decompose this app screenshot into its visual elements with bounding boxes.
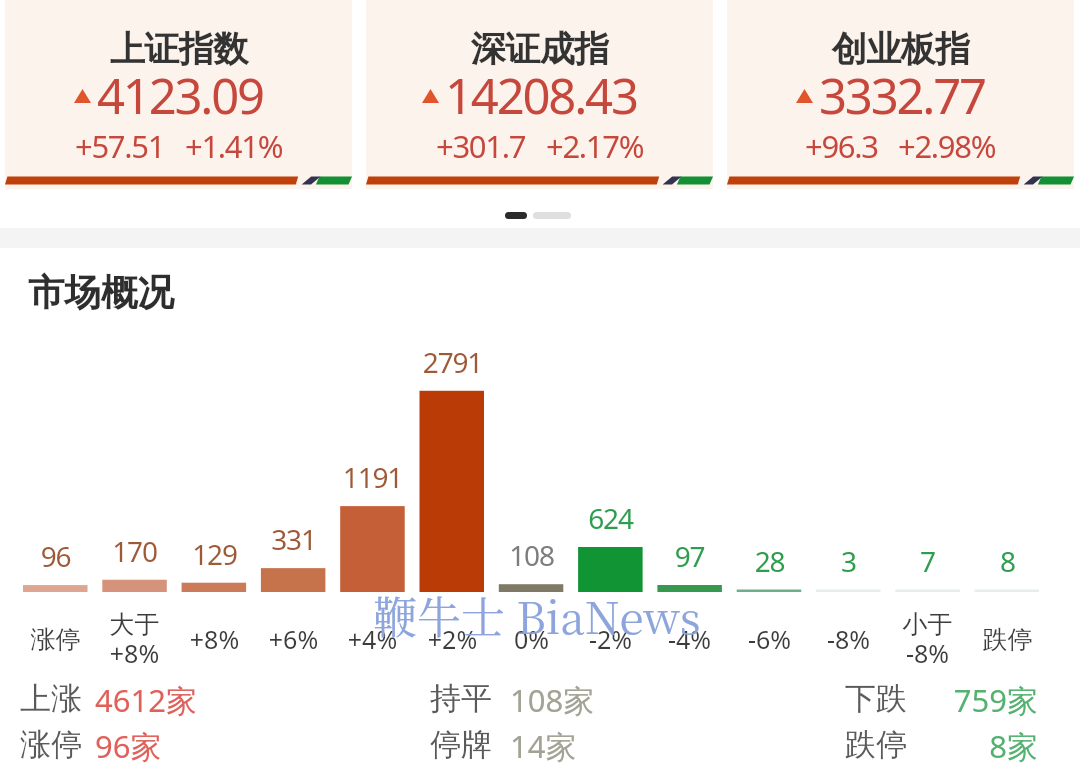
button[interactable]: 小于 -8% — [885, 609, 970, 669]
staticText: 3332.77 — [819, 62, 985, 129]
staticText: 4123.09 — [97, 62, 263, 129]
staticText: 8家 — [900, 725, 1038, 767]
staticText: 1191 — [312, 458, 433, 496]
button[interactable]: +2% — [410, 609, 495, 669]
button[interactable]: 0% — [489, 609, 574, 669]
button[interactable]: 涨停 — [13, 609, 98, 669]
staticText: +1.41% — [185, 125, 283, 167]
button[interactable]: -8% — [806, 609, 891, 669]
staticText: 96家 — [95, 725, 162, 767]
button[interactable]: Page 2 — [533, 212, 571, 219]
staticText: 108家 — [510, 679, 595, 721]
staticText: +8% — [172, 622, 257, 656]
staticText: 2791 — [392, 343, 513, 381]
staticText: 大于 +8% — [92, 609, 177, 669]
staticText: 下跌 — [845, 679, 907, 718]
staticText: 3 — [788, 542, 909, 580]
staticText: +2.17% — [546, 125, 644, 167]
staticText: 28 — [709, 542, 830, 580]
staticText: 129 — [154, 535, 275, 573]
staticText: 跌停 — [845, 725, 907, 764]
button[interactable]: -6% — [727, 609, 812, 669]
button[interactable]: 创业板指 — [727, 0, 1074, 189]
button[interactable]: -2% — [568, 609, 653, 669]
staticText: 14208.43 — [445, 62, 637, 129]
staticText: 创业板指 — [832, 27, 970, 71]
staticText: 上证指数 — [110, 27, 248, 71]
staticText: -4% — [647, 622, 732, 656]
staticText: 0% — [489, 622, 574, 656]
staticText: 331 — [233, 520, 354, 558]
staticText: -6% — [727, 622, 812, 656]
staticText: 96 — [0, 537, 116, 575]
staticText: +301.7 — [436, 125, 526, 167]
button[interactable]: 下跌 — [760, 671, 1050, 717]
staticText: 小于 -8% — [885, 609, 970, 669]
staticText: 涨停 — [20, 725, 82, 764]
button[interactable]: -4% — [647, 609, 732, 669]
staticText: -8% — [806, 622, 891, 656]
staticText: 624 — [550, 499, 671, 537]
staticText: 持平 — [430, 679, 492, 718]
staticText: +6% — [251, 622, 336, 656]
staticText: 市场概况 — [28, 270, 174, 316]
staticText: 7 — [867, 542, 988, 580]
staticText: 深证成指 — [471, 27, 609, 71]
staticText: 鞭牛士 BiaNews — [373, 583, 701, 646]
button[interactable]: 深证成指 — [366, 0, 713, 189]
button[interactable]: 上证指数 — [5, 0, 352, 189]
button[interactable]: 持平 — [420, 671, 740, 717]
button[interactable]: 大于 +8% — [92, 609, 177, 669]
staticText: 停牌 — [430, 725, 492, 764]
staticText: +57.51 — [75, 125, 165, 167]
staticText: +4% — [330, 622, 415, 656]
staticText: 4612家 — [95, 679, 197, 721]
staticText: 上涨 — [20, 679, 82, 718]
staticText: 108 — [471, 536, 592, 574]
staticText: -2% — [568, 622, 653, 656]
staticText: 涨停 — [13, 624, 98, 655]
button[interactable]: 跌停 — [760, 717, 1050, 763]
staticText: 759家 — [900, 679, 1038, 721]
staticText: +96.3 — [805, 125, 878, 167]
button[interactable]: 停牌 — [420, 717, 740, 763]
button[interactable]: 跌停 — [965, 609, 1050, 669]
button[interactable]: +4% — [330, 609, 415, 669]
staticText: 97 — [629, 537, 750, 575]
staticText: 8 — [947, 542, 1068, 580]
button[interactable]: Page 1 — [505, 212, 527, 219]
button[interactable]: +8% — [172, 609, 257, 669]
staticText: 跌停 — [965, 624, 1050, 655]
staticText: +2.98% — [898, 125, 996, 167]
button[interactable]: 市场概况 — [28, 270, 174, 316]
button[interactable]: +6% — [251, 609, 336, 669]
staticText: 170 — [74, 532, 195, 570]
staticText: +2% — [410, 622, 495, 656]
staticText: 14家 — [510, 725, 577, 767]
button[interactable]: 上涨 — [12, 671, 352, 717]
button[interactable]: 涨停 — [12, 717, 352, 763]
